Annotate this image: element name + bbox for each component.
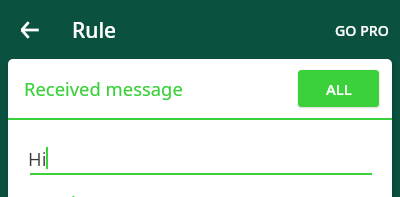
staticText: Reply message bbox=[38, 190, 168, 197]
staticText: Hi bbox=[28, 146, 47, 171]
button[interactable]: ALL bbox=[298, 70, 379, 107]
staticText: ALL bbox=[326, 79, 352, 99]
button[interactable]: Back bbox=[13, 13, 47, 47]
button[interactable]: Hi bbox=[8, 146, 392, 197]
button[interactable]: Received message bbox=[8, 59, 268, 118]
staticText: Received message bbox=[24, 76, 183, 101]
button[interactable]: GO PRO bbox=[323, 13, 400, 48]
staticText: Rule bbox=[72, 16, 117, 45]
staticText: GO PRO bbox=[335, 21, 389, 40]
